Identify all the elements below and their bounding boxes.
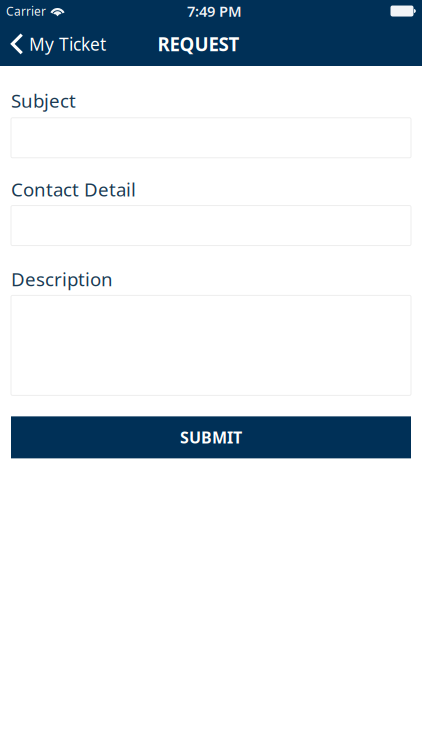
staticText: REQUEST bbox=[157, 32, 239, 56]
staticText: 7:49 PM bbox=[187, 1, 242, 21]
button[interactable]: My Ticket bbox=[0, 22, 114, 66]
staticText: My Ticket bbox=[29, 32, 106, 55]
staticText: Description bbox=[11, 267, 113, 291]
staticText: Carrier bbox=[6, 3, 46, 19]
staticText: SUBMIT bbox=[180, 427, 242, 448]
button[interactable]: SUBMIT bbox=[11, 416, 411, 458]
staticText: Contact Detail bbox=[11, 177, 136, 202]
staticText: Subject bbox=[11, 88, 76, 113]
